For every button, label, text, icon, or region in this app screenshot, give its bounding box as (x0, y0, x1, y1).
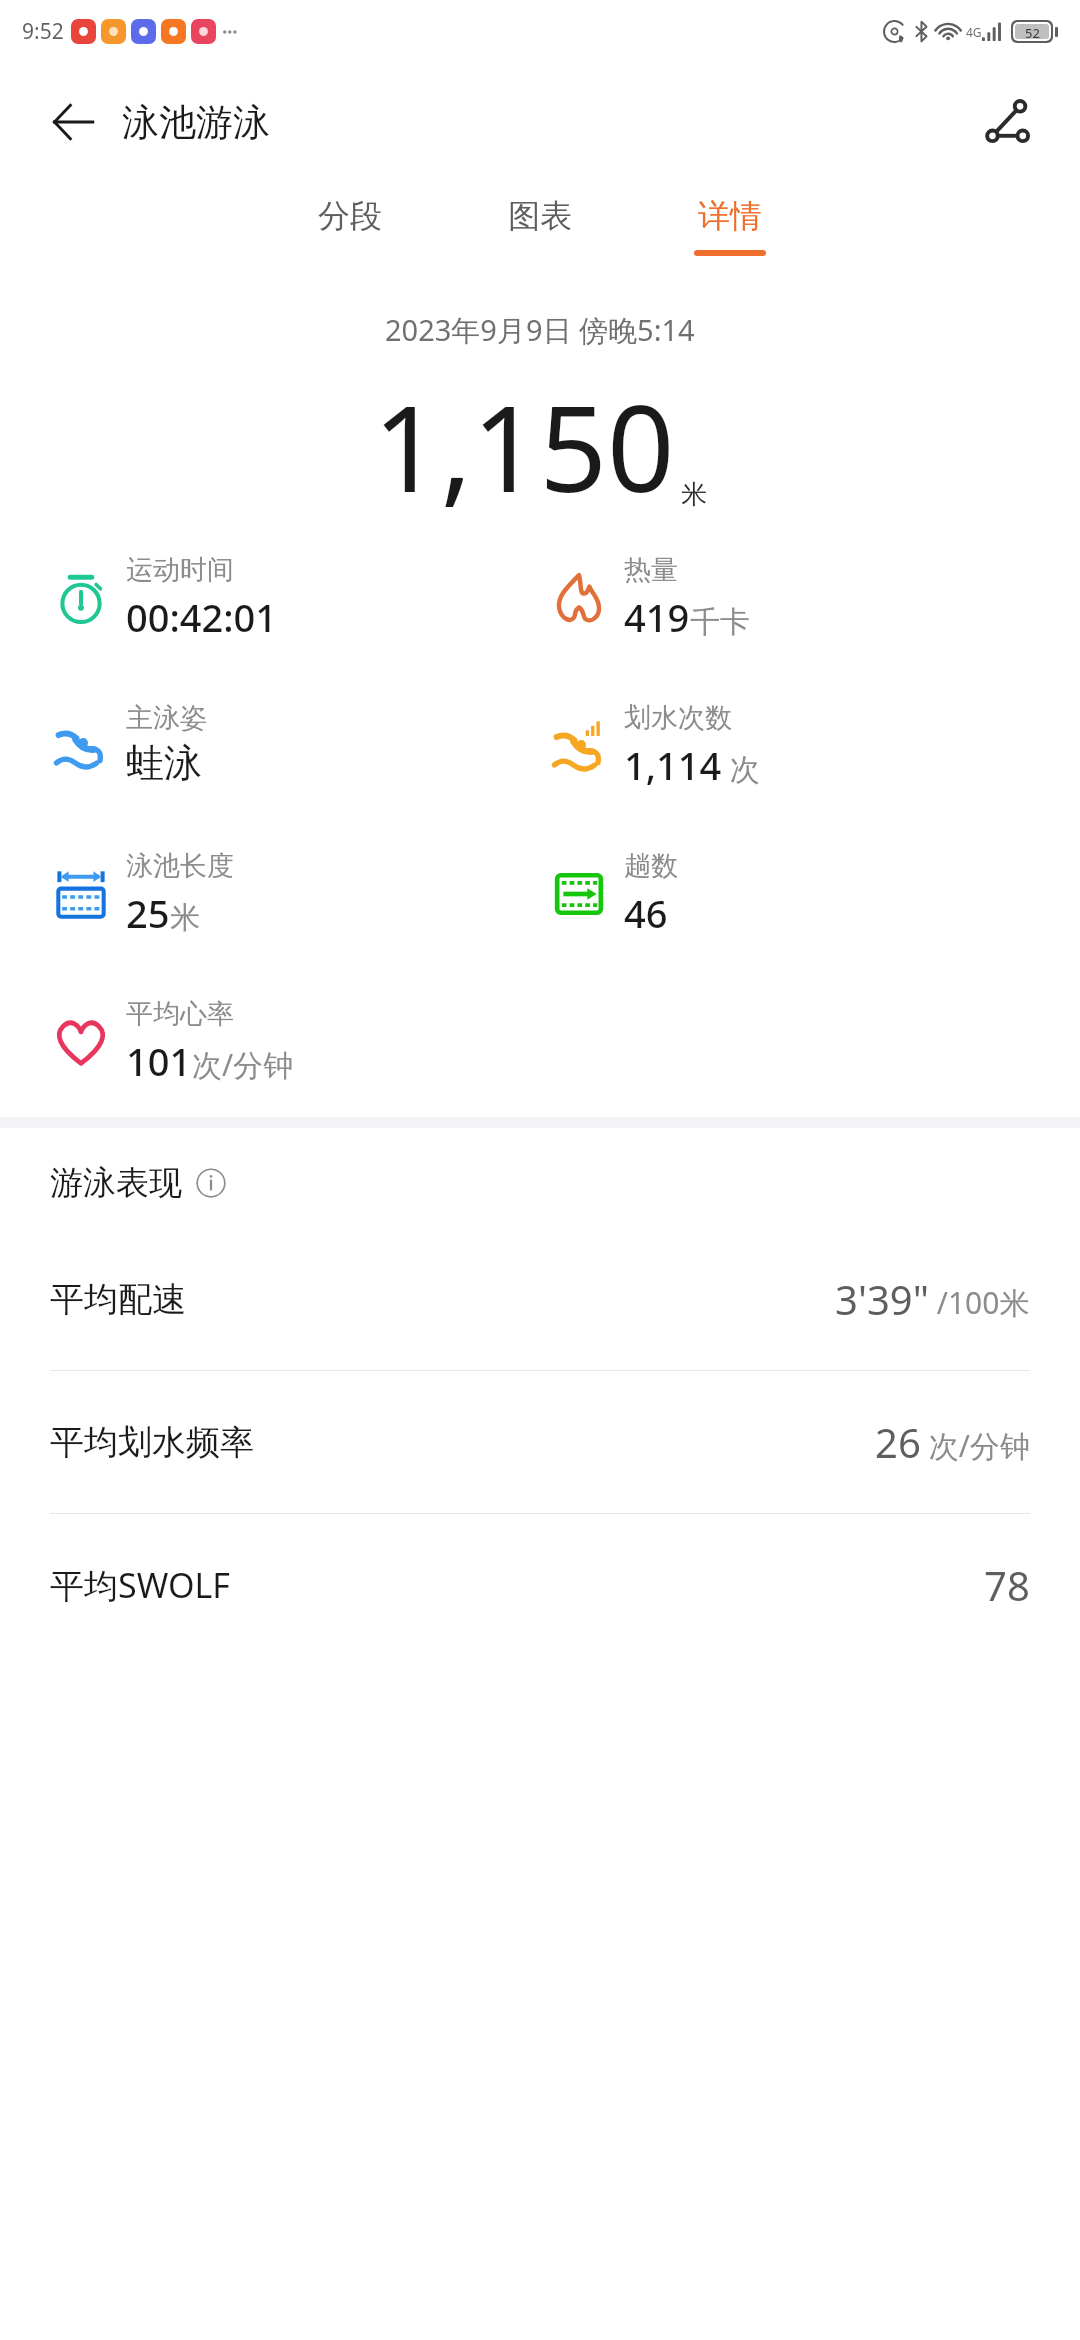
button[interactable]: 趟数 (548, 849, 1080, 939)
button[interactable]: 图表 (476, 182, 604, 250)
staticText: 2023年9月9日 傍晚5:14 (385, 310, 695, 350)
staticText: 划水次数 (624, 701, 732, 735)
button[interactable]: 详情 (666, 182, 794, 256)
staticText: 419 (624, 591, 690, 643)
staticText: 26 (875, 1415, 921, 1469)
staticText: 4G (966, 24, 982, 40)
button[interactable]: 游泳表现 (50, 1162, 1080, 1204)
staticText: 运动时间 (126, 553, 234, 587)
staticText: 次/分钟 (192, 1044, 294, 1085)
staticText: 米 (170, 899, 200, 937)
staticText: 52 (1025, 24, 1040, 39)
staticText: 78 (984, 1558, 1030, 1612)
button[interactable]: 平均心率 (50, 997, 540, 1087)
staticText: 趟数 (624, 849, 678, 883)
button[interactable]: 分段 (286, 182, 414, 250)
button[interactable]: 平均SWOLF (0, 1514, 1080, 1656)
staticText: 00:42:01 (126, 591, 278, 643)
button[interactable]: Share (974, 87, 1044, 157)
staticText: 次/分钟 (921, 1425, 1030, 1466)
button[interactable]: 划水次数 (548, 701, 1080, 791)
staticText: 1,114 (624, 739, 722, 791)
button[interactable]: Back (42, 91, 104, 153)
staticText: 101 (126, 1035, 192, 1087)
staticText: 主泳姿 (126, 701, 207, 735)
button[interactable]: 热量 (548, 553, 1080, 643)
staticText: 9:52 (22, 17, 64, 46)
staticText: /100米 (929, 1282, 1030, 1323)
staticText: 次 (722, 748, 760, 789)
staticText: 平均配速 (50, 1278, 186, 1321)
staticText: 平均划水频率 (50, 1421, 254, 1464)
staticText: 平均心率 (126, 997, 234, 1031)
button[interactable]: 平均配速 (0, 1228, 1080, 1370)
other: Info (194, 1166, 228, 1200)
staticText: 游泳表现 (50, 1162, 182, 1204)
staticText: 25 (126, 887, 170, 939)
button[interactable]: 主泳姿 (50, 701, 540, 787)
staticText: 热量 (624, 553, 678, 587)
staticText: 米 (681, 478, 707, 511)
staticText: 蛙泳 (126, 739, 202, 787)
staticText: 1,150 (373, 366, 675, 527)
staticText: 平均SWOLF (50, 1562, 230, 1608)
staticText: 3'39" (835, 1272, 929, 1326)
staticText: 详情 (698, 196, 762, 236)
staticText: 千卡 (690, 603, 750, 641)
staticText: 泳池游泳 (122, 99, 270, 146)
staticText: 图表 (508, 196, 572, 236)
staticText: 46 (624, 887, 668, 939)
button[interactable]: 泳池长度 (50, 849, 540, 939)
button[interactable]: 运动时间 (50, 553, 540, 643)
button[interactable]: 平均划水频率 (0, 1371, 1080, 1513)
staticText: 泳池长度 (126, 849, 234, 883)
staticText: 分段 (318, 196, 382, 236)
